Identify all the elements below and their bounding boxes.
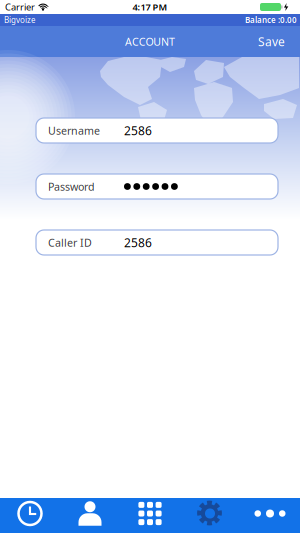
button[interactable]: Username [36, 118, 278, 143]
staticText: Bigvoize [4, 15, 36, 25]
staticText: 2586 [124, 234, 152, 250]
staticText: ACCOUNT [125, 34, 175, 49]
button[interactable]: Save [258, 33, 300, 49]
button[interactable]: More [240, 498, 300, 533]
button[interactable]: Recents [0, 498, 60, 533]
button[interactable]: Contacts [60, 498, 120, 533]
staticText: 2586 [124, 122, 152, 138]
button[interactable]: Caller ID [36, 230, 278, 255]
staticText: Save [258, 33, 285, 49]
staticText: Caller ID [48, 235, 92, 250]
staticText: Password [48, 179, 95, 194]
button[interactable]: Keypad [120, 498, 180, 533]
staticText: Carrier [5, 1, 35, 13]
staticText: Balance :0.00 [245, 15, 297, 25]
button[interactable]: Settings [180, 498, 240, 533]
staticText: 4:17 PM [132, 1, 167, 13]
button[interactable]: Password [36, 174, 278, 199]
staticText: Username [48, 123, 100, 138]
